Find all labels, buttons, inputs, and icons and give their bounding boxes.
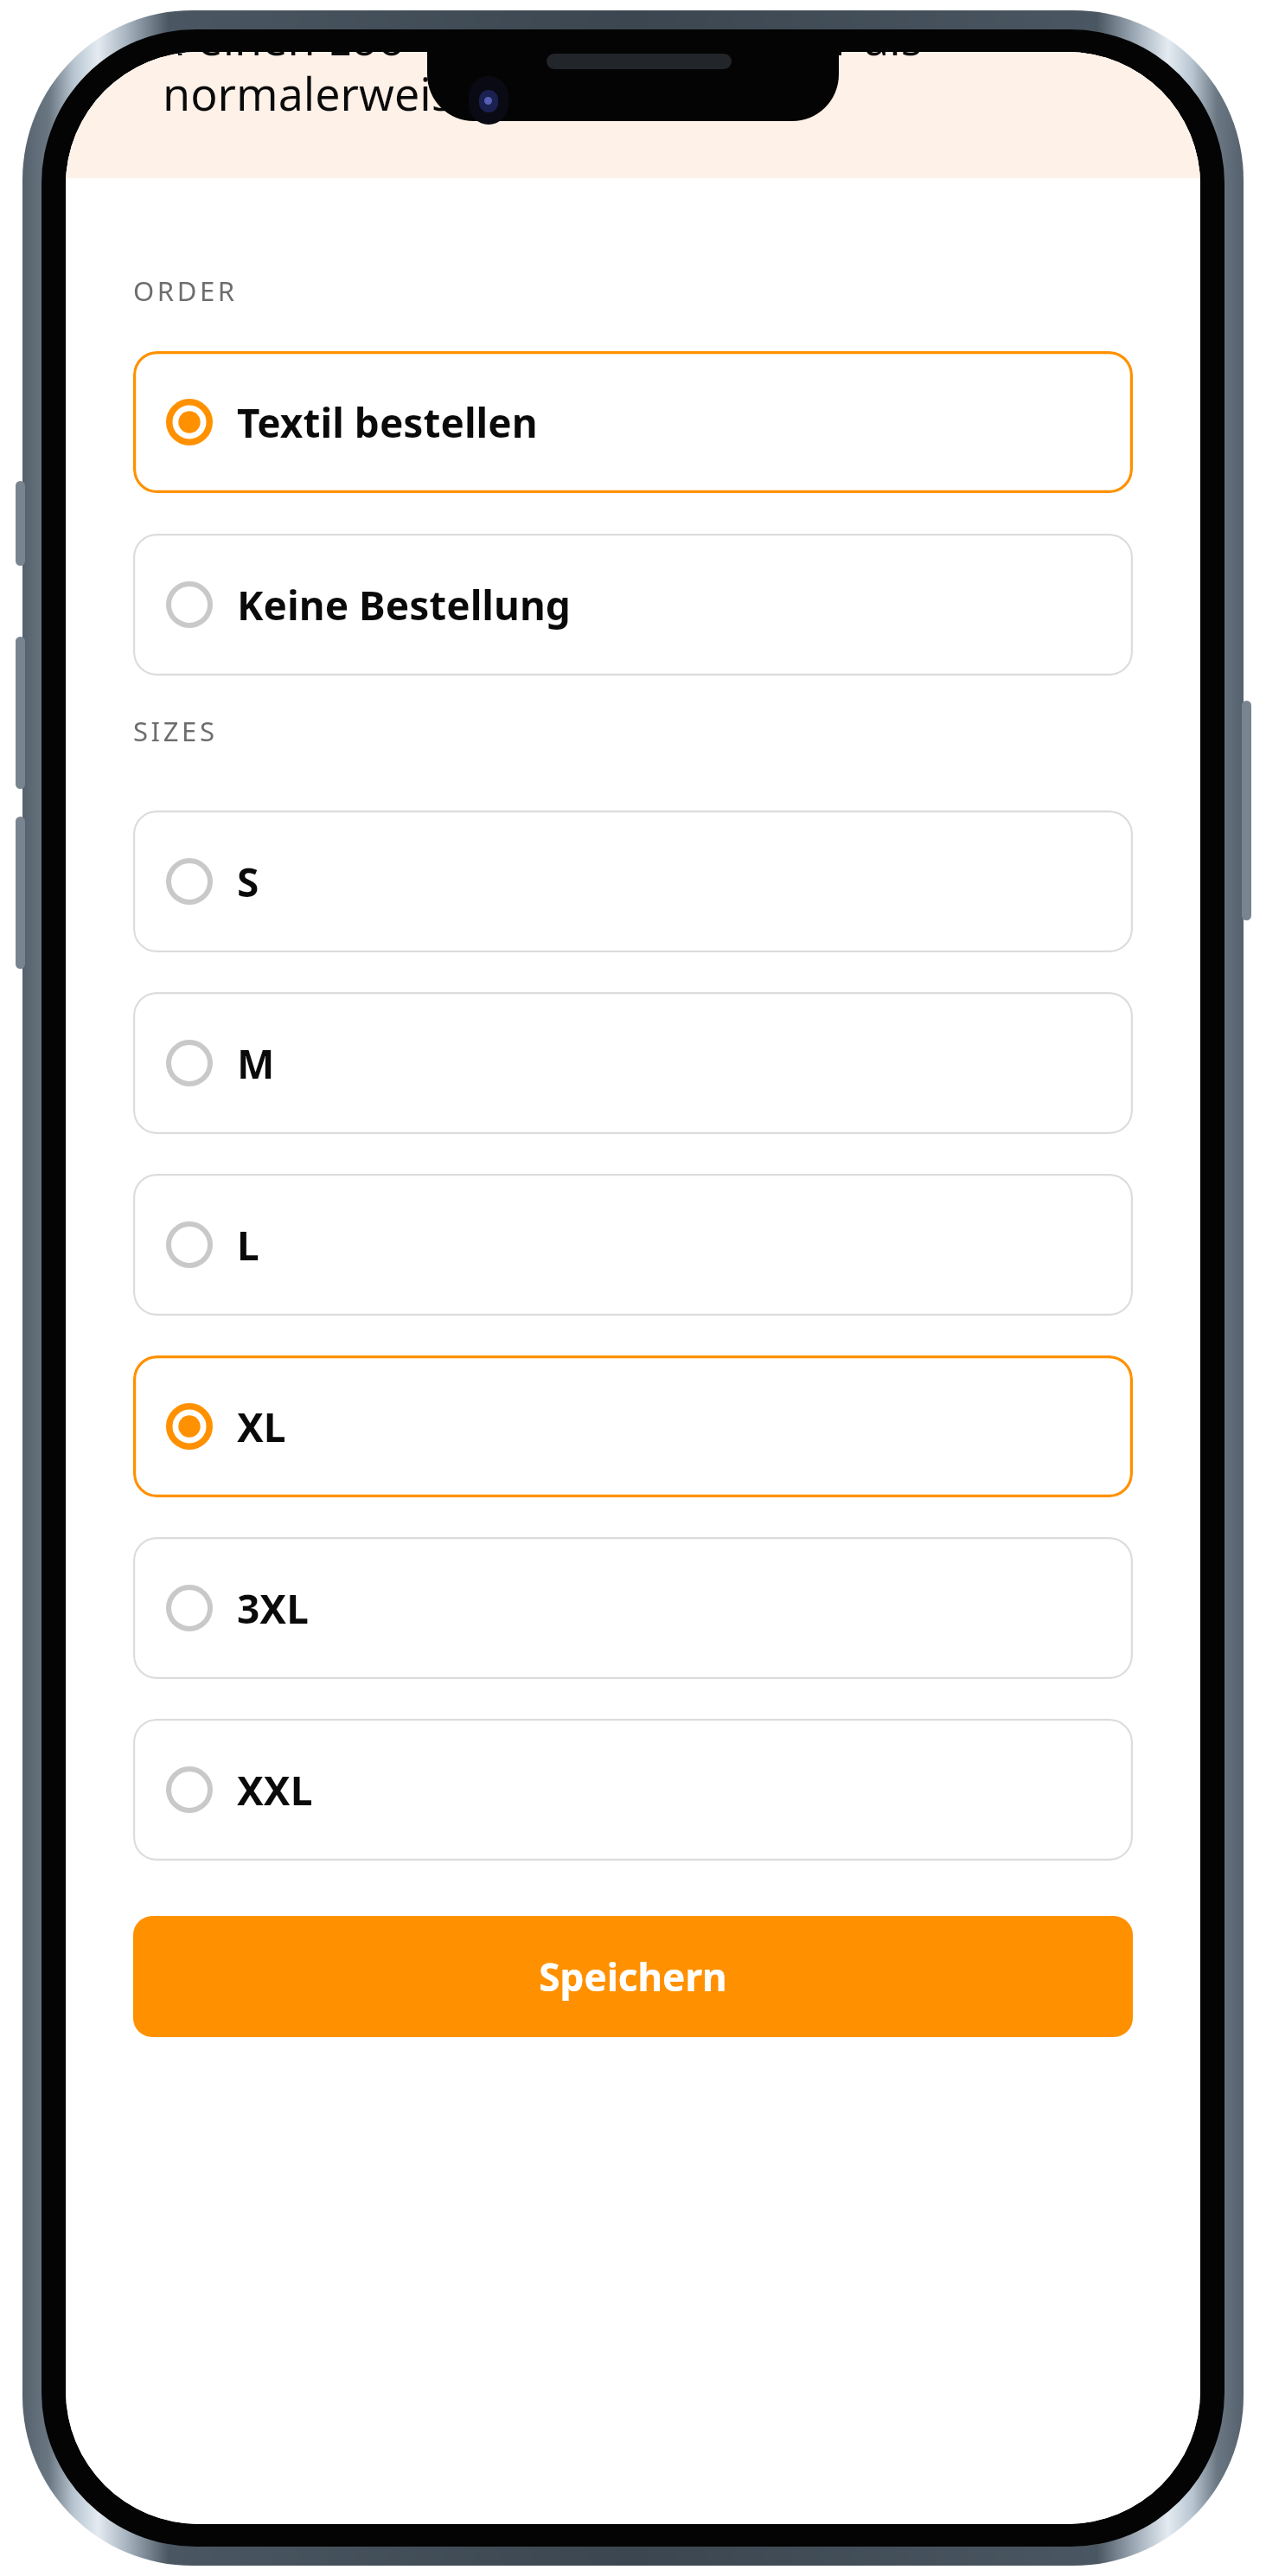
button[interactable]: Not selected <box>133 811 1133 952</box>
button[interactable]: Not selected <box>133 1174 1133 1316</box>
other: Not selected <box>166 581 213 628</box>
staticText: 3XL <box>237 1581 309 1636</box>
other: Not selected <box>166 1221 213 1268</box>
other: Not selected <box>166 858 213 905</box>
button[interactable]: Selected <box>133 1355 1133 1497</box>
button[interactable]: Selected <box>133 351 1133 493</box>
button[interactable]: Not selected <box>133 1719 1133 1861</box>
staticText: M <box>237 1036 275 1091</box>
staticText: Speichern <box>539 1951 727 2002</box>
staticText: Textil bestellen <box>237 395 538 450</box>
staticText: S <box>237 855 259 909</box>
button[interactable]: Not selected <box>133 992 1133 1134</box>
staticText: größer als <box>707 52 923 68</box>
staticText: XL <box>237 1400 286 1454</box>
other: Not selected <box>166 1040 213 1086</box>
staticText: XXL <box>237 1763 313 1817</box>
other: Selected <box>166 1403 213 1450</box>
button[interactable]: Speichern <box>133 1916 1133 2037</box>
other: Selected <box>166 399 213 445</box>
staticText: normalerweis <box>163 62 453 124</box>
button[interactable]: Not selected <box>133 1537 1133 1679</box>
staticText: SIZES <box>133 713 218 749</box>
staticText: L <box>237 1218 259 1272</box>
button[interactable]: Not selected <box>133 534 1133 676</box>
staticText: ORDER <box>133 272 238 309</box>
other: Not selected <box>166 1766 213 1813</box>
staticText: il einen Loo <box>163 52 406 68</box>
other: Not selected <box>166 1585 213 1631</box>
staticText: Keine Bestellung <box>237 578 571 632</box>
